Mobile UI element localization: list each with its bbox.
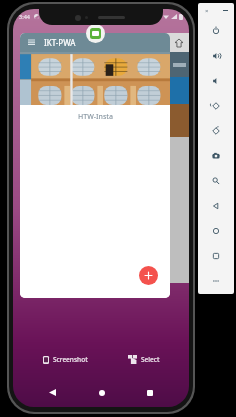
button[interactable]: Zoom bbox=[198, 168, 234, 193]
button[interactable]: Background app bbox=[162, 33, 189, 283]
staticText: 3:44 bbox=[19, 13, 30, 20]
button[interactable]: Power bbox=[198, 18, 234, 43]
button[interactable]: Back bbox=[44, 384, 61, 401]
button[interactable]: Menu bbox=[20, 33, 170, 298]
button[interactable]: Take screenshot bbox=[198, 143, 234, 168]
button[interactable]: Menu bbox=[26, 37, 37, 48]
button[interactable]: Select bbox=[124, 352, 164, 367]
button[interactable]: Home bbox=[198, 218, 234, 243]
button[interactable]: Volume down bbox=[198, 68, 234, 93]
staticText: × bbox=[205, 7, 209, 14]
button[interactable]: Rotate right bbox=[198, 118, 234, 143]
button[interactable]: App icon bbox=[86, 24, 105, 43]
button[interactable]: Recents bbox=[141, 384, 158, 401]
button[interactable]: Overview bbox=[198, 243, 234, 268]
button[interactable]: Add post bbox=[139, 266, 158, 285]
button[interactable]: Back bbox=[198, 193, 234, 218]
button[interactable]: Rotate left bbox=[198, 93, 234, 118]
staticText: Select bbox=[141, 355, 160, 364]
button[interactable]: Screenshot bbox=[39, 352, 92, 367]
staticText: HTW-Insta bbox=[78, 112, 113, 122]
button[interactable]: More options bbox=[198, 268, 234, 293]
staticText: Screenshot bbox=[53, 355, 88, 364]
button[interactable]: Home bbox=[93, 384, 110, 401]
button[interactable]: Volume up bbox=[198, 43, 234, 68]
button[interactable]: Minimize bbox=[222, 7, 229, 14]
button[interactable]: Close bbox=[203, 7, 210, 14]
staticText: IKT-PWA bbox=[44, 37, 76, 48]
